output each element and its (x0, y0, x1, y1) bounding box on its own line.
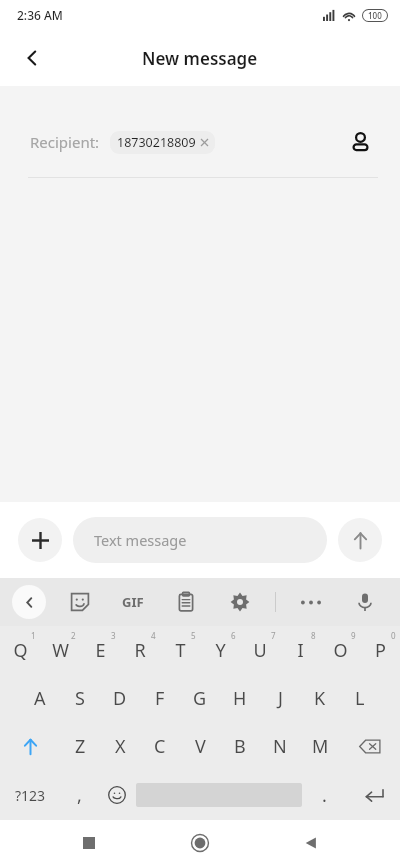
button[interactable]: Recent apps (67, 821, 111, 865)
staticText: G (193, 686, 207, 711)
button[interactable]: Stickers (61, 583, 99, 621)
button[interactable]: N (260, 722, 300, 770)
button[interactable]: C (140, 722, 180, 770)
button[interactable]: S (60, 674, 100, 722)
staticText: Z (75, 734, 86, 759)
button[interactable]: V (180, 722, 220, 770)
button[interactable]: Emoji (98, 770, 136, 820)
staticText: S (75, 686, 85, 711)
staticText: H (233, 686, 247, 711)
staticText: GIF (122, 593, 144, 611)
staticText: X (115, 734, 126, 759)
button[interactable]: Contacts (342, 124, 378, 160)
staticText: 2 (71, 630, 76, 641)
button[interactable]: 18730218809 (110, 131, 215, 154)
staticText: D (113, 686, 127, 711)
button[interactable]: M (300, 722, 340, 770)
staticText: M (312, 734, 329, 759)
staticText: K (314, 686, 326, 711)
staticText: 8 (311, 630, 316, 641)
button[interactable]: B (220, 722, 260, 770)
staticText: J (278, 686, 283, 711)
button[interactable]: Back (8, 34, 56, 82)
staticText: 4 (151, 630, 156, 641)
button[interactable]: R (120, 626, 160, 674)
staticText: A (34, 686, 46, 711)
button[interactable]: T (160, 626, 200, 674)
button[interactable]: K (300, 674, 340, 722)
staticText: 7 (271, 630, 276, 641)
button[interactable]: A (20, 674, 60, 722)
staticText: W (52, 638, 69, 663)
button[interactable]: U (240, 626, 280, 674)
button[interactable]: Settings (221, 583, 259, 621)
staticText: 9 (351, 630, 356, 641)
button[interactable]: Backspace (340, 722, 400, 770)
staticText: Recipient: (30, 132, 100, 152)
button[interactable]: H (220, 674, 260, 722)
button[interactable]: Back (289, 821, 333, 865)
staticText: T (175, 638, 186, 663)
staticText: 100 (368, 10, 382, 21)
button[interactable]: W (40, 626, 80, 674)
button[interactable]: Home (178, 821, 222, 865)
staticText: . (322, 783, 327, 808)
button[interactable]: O (320, 626, 360, 674)
button[interactable]: ?123 (0, 770, 60, 820)
staticText: L (355, 686, 365, 711)
staticText: 6 (231, 630, 236, 641)
staticText: Text message (94, 530, 187, 550)
staticText: 2:36 AM (17, 7, 63, 23)
staticText: V (195, 734, 206, 759)
button[interactable]: I (280, 626, 320, 674)
staticText: 18730218809 (117, 134, 196, 151)
staticText: Q (13, 638, 28, 663)
button[interactable]: Collapse toolbar (12, 585, 46, 619)
staticText: , (77, 783, 82, 808)
button[interactable]: Q (0, 626, 40, 674)
staticText: ?123 (15, 786, 46, 805)
staticText: B (234, 734, 246, 759)
button[interactable]: G (180, 674, 220, 722)
button[interactable]: F (140, 674, 180, 722)
staticText: I (297, 638, 304, 663)
button[interactable]: L (340, 674, 380, 722)
staticText: New message (142, 47, 258, 70)
button[interactable]: Send (338, 518, 382, 562)
staticText: P (375, 638, 386, 663)
staticText: E (95, 638, 106, 663)
staticText: Y (215, 638, 226, 663)
button[interactable]: X (100, 722, 140, 770)
staticText: U (253, 638, 267, 663)
button[interactable]: E (80, 626, 120, 674)
button[interactable]: Voice input (346, 583, 384, 621)
button[interactable]: P (360, 626, 400, 674)
button[interactable]: Shift (0, 722, 60, 770)
staticText: 0 (391, 630, 396, 641)
staticText: F (155, 686, 165, 711)
button[interactable]: Add attachment (18, 518, 62, 562)
button[interactable]: Z (60, 722, 100, 770)
staticText: N (273, 734, 287, 759)
button[interactable]: GIF (114, 583, 152, 621)
staticText: 1 (31, 630, 36, 641)
button[interactable]: J (260, 674, 300, 722)
staticText: O (333, 638, 348, 663)
button[interactable]: D (100, 674, 140, 722)
button[interactable]: , (60, 770, 98, 820)
button[interactable]: . (302, 770, 347, 820)
staticText: 5 (191, 630, 196, 641)
button[interactable]: Clipboard (167, 583, 205, 621)
button[interactable]: Enter (347, 770, 400, 820)
button[interactable]: Y (200, 626, 240, 674)
staticText: 3 (111, 630, 116, 641)
button[interactable]: Text message (73, 517, 327, 563)
staticText: R (134, 638, 146, 663)
staticText: C (154, 734, 166, 759)
button[interactable]: More options (292, 583, 330, 621)
